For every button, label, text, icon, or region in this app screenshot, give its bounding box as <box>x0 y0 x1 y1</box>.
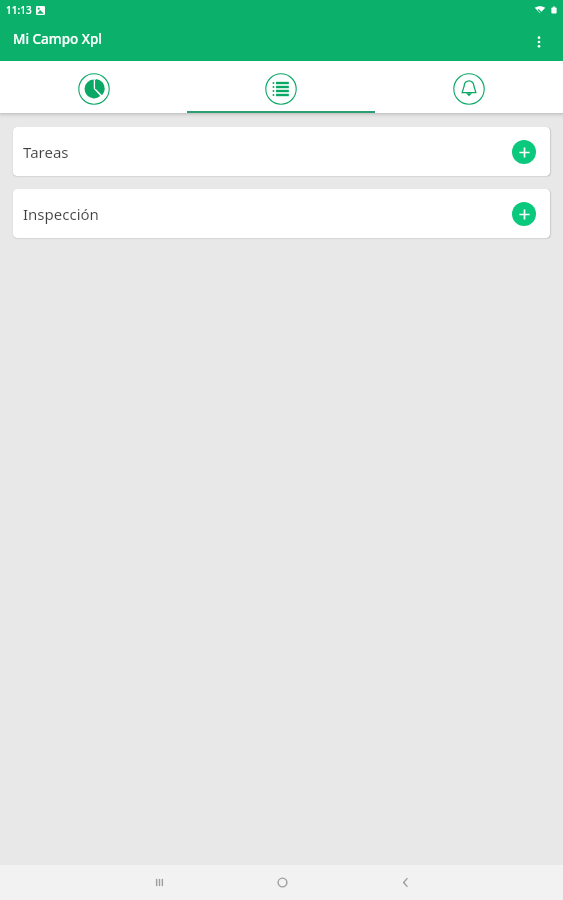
button[interactable]: Add Inspección <box>512 202 536 226</box>
staticText: Mi Campo Xpl <box>13 30 103 48</box>
button[interactable]: Recents <box>139 865 179 900</box>
button[interactable]: Add Tareas <box>512 140 536 164</box>
staticText: Tareas <box>23 142 69 162</box>
button[interactable]: Inspección <box>13 189 550 238</box>
button[interactable]: Home <box>262 865 302 900</box>
staticText: Inspección <box>23 204 99 224</box>
button[interactable]: Notifications <box>375 61 563 113</box>
button[interactable]: Dashboard <box>0 61 187 113</box>
button[interactable]: Back <box>385 865 425 900</box>
staticText: 11:13 <box>6 3 32 17</box>
button[interactable]: More options <box>523 26 555 58</box>
button[interactable]: Tasks list <box>187 61 375 113</box>
button[interactable]: Tareas <box>13 127 550 176</box>
